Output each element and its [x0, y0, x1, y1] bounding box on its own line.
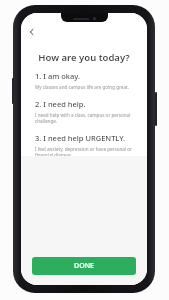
button[interactable]: 1. I am okay.	[35, 71, 133, 90]
button[interactable]: 2. I need help.	[35, 99, 133, 124]
button[interactable]: Back	[25, 25, 39, 39]
staticText: I need help with a class, campus or pers…	[35, 112, 133, 124]
staticText: 2. I need help.	[35, 99, 86, 109]
staticText: My classes and campus life are going gre…	[35, 84, 129, 90]
staticText: 3. I need help URGENTLY.	[35, 133, 126, 143]
button[interactable]: DONE	[32, 257, 136, 275]
staticText: I feel anxiety, depression or have perso…	[35, 146, 133, 158]
staticText: 1. I am okay.	[35, 71, 80, 81]
staticText: DONE	[74, 261, 94, 271]
staticText: How are you today?	[21, 51, 147, 64]
button[interactable]: 3. I need help URGENTLY.	[35, 133, 133, 158]
